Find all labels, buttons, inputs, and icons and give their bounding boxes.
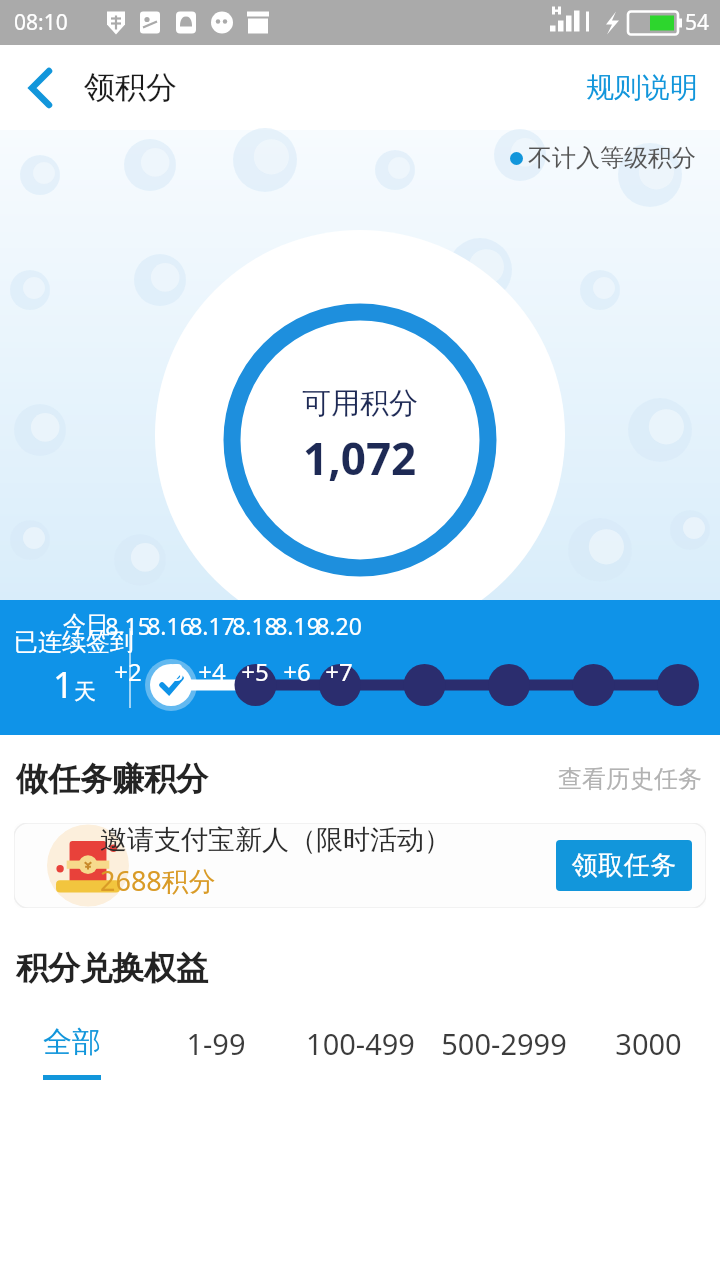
- button[interactable]: 8.19: [265, 610, 329, 688]
- staticText: 500-2999: [441, 1024, 567, 1063]
- staticText: 积分兑换权益: [16, 948, 208, 988]
- staticText: 邀请支付宝新人（限时活动）: [100, 823, 451, 857]
- staticText: 3000: [615, 1024, 682, 1063]
- button[interactable]: 8.17: [180, 610, 244, 688]
- button[interactable]: 邀请支付宝新人（限时活动）: [14, 823, 706, 908]
- staticText: 54: [685, 8, 710, 37]
- staticText: 1-99: [186, 1024, 246, 1063]
- staticText: 可用积分: [302, 385, 418, 422]
- staticText: 8.16: [147, 610, 193, 641]
- button[interactable]: Back: [8, 56, 72, 120]
- button[interactable]: 8.20: [307, 610, 371, 688]
- button[interactable]: 今日: [54, 610, 118, 653]
- staticText: 领取任务: [572, 849, 676, 882]
- staticText: 8.20: [316, 610, 362, 641]
- button[interactable]: 8.15: [96, 610, 160, 688]
- staticText: 今日: [63, 610, 109, 639]
- staticText: 不计入等级积分: [528, 143, 696, 173]
- staticText: 8.15: [105, 610, 151, 641]
- staticText: +2: [114, 655, 142, 688]
- staticText: 8.19: [274, 610, 320, 641]
- staticText: 1: [53, 660, 74, 709]
- staticText: 全部: [43, 1024, 101, 1061]
- staticText: 领积分: [84, 68, 177, 107]
- button[interactable]: 1-99: [144, 1024, 288, 1077]
- button[interactable]: 查看历史任务: [558, 764, 702, 794]
- staticText: 奖励2688积分: [100, 905, 251, 908]
- staticText: 8.17: [189, 610, 235, 641]
- button[interactable]: 8.18: [223, 610, 287, 688]
- staticText: +7: [325, 655, 353, 688]
- staticText: 8.18: [232, 610, 278, 641]
- button[interactable]: 规则说明: [586, 70, 698, 105]
- staticText: +4: [198, 655, 226, 688]
- button[interactable]: 领取任务: [556, 840, 692, 891]
- staticText: 规则说明: [586, 70, 698, 105]
- staticText: +3: [156, 655, 184, 688]
- staticText: 1,072: [303, 428, 417, 488]
- staticText: 天: [74, 678, 96, 706]
- staticText: +6: [283, 655, 311, 688]
- button[interactable]: 3000: [576, 1024, 720, 1077]
- staticText: 查看历史任务: [558, 764, 702, 794]
- button[interactable]: 8.16: [138, 610, 202, 688]
- staticText: 做任务赚积分: [16, 759, 208, 799]
- staticText: 100-499: [306, 1024, 415, 1063]
- button[interactable]: 全部: [0, 1024, 144, 1080]
- staticText: +5: [241, 655, 269, 688]
- staticText: 08:10: [14, 8, 68, 37]
- staticText: 2688积分: [100, 862, 216, 899]
- staticText: 已连续签到: [14, 627, 134, 657]
- button[interactable]: 500-2999: [432, 1024, 576, 1077]
- button[interactable]: 100-499: [288, 1024, 432, 1077]
